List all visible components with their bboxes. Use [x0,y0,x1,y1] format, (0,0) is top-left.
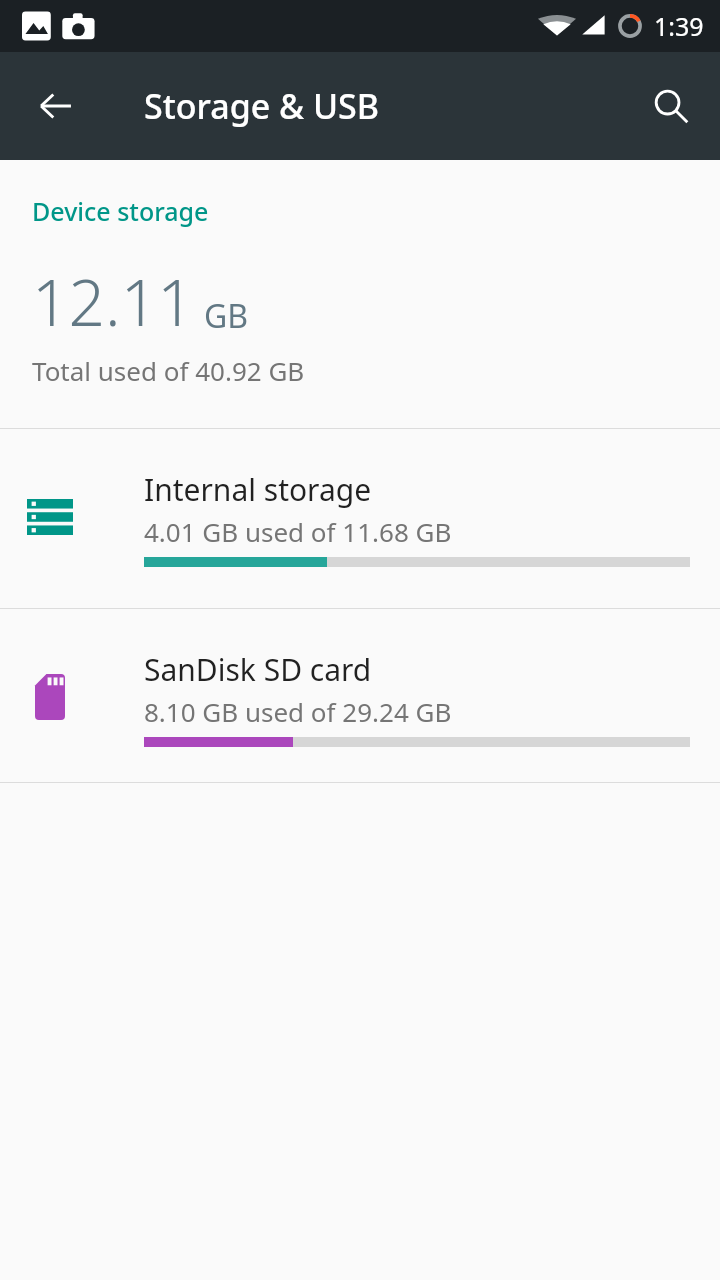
staticText: 12.11 [32,258,194,345]
staticText: Total used of 40.92 GB [32,353,305,388]
staticText: SanDisk SD card [144,649,372,690]
staticText: 8.10 GB used of 29.24 GB [144,694,452,729]
staticText: 1:39 [654,9,704,43]
other: Internal storage [20,487,80,547]
staticText: Device storage [32,194,209,228]
button[interactable]: SD card [0,609,720,782]
button[interactable]: Internal storage [0,429,720,608]
staticText: Storage & USB [144,83,380,129]
other: SD card [20,667,80,727]
staticText: Internal storage [144,469,372,510]
button[interactable]: Back [24,74,88,138]
staticText: GB [204,294,249,338]
button[interactable]: Search [639,74,703,138]
staticText: 4.01 GB used of 11.68 GB [144,514,452,549]
